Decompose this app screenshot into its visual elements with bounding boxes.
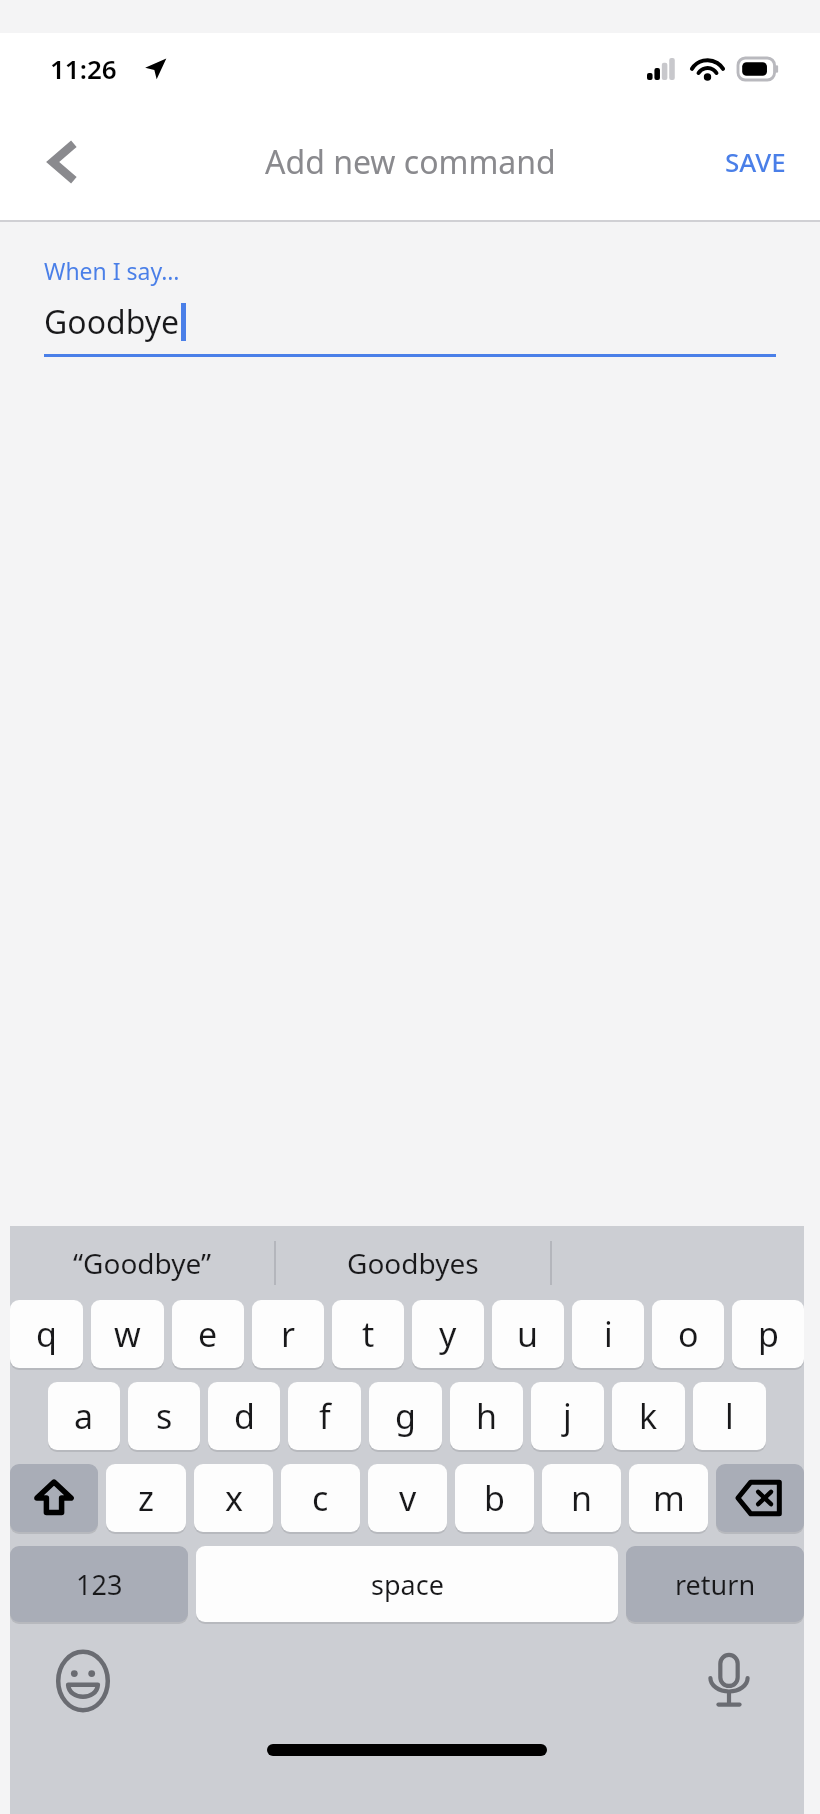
button[interactable]: Backspace — [716, 1464, 804, 1534]
staticText: d — [234, 1393, 255, 1439]
button[interactable]: m — [629, 1464, 708, 1534]
staticText: x — [225, 1475, 243, 1521]
button[interactable]: i — [572, 1300, 644, 1370]
button[interactable]: j — [531, 1382, 604, 1452]
staticText: g — [395, 1393, 416, 1439]
staticText: k — [639, 1393, 658, 1439]
button[interactable]: x — [194, 1464, 273, 1534]
button[interactable]: k — [612, 1382, 685, 1452]
button[interactable]: y — [412, 1300, 484, 1370]
staticText: u — [517, 1311, 539, 1357]
button[interactable]: Dictation — [698, 1650, 760, 1712]
staticText: f — [319, 1393, 331, 1439]
staticText: Goodbye — [44, 300, 180, 344]
button[interactable]: c — [281, 1464, 360, 1534]
button[interactable]: “Goodbye” — [10, 1226, 274, 1300]
button[interactable]: Back — [22, 122, 102, 202]
button[interactable]: 123 — [10, 1546, 188, 1624]
button[interactable]: d — [208, 1382, 280, 1452]
staticText: p — [758, 1311, 779, 1357]
button[interactable]: b — [455, 1464, 534, 1534]
staticText: r — [281, 1311, 296, 1357]
staticText: s — [156, 1393, 173, 1439]
staticText: c — [312, 1475, 329, 1521]
button[interactable]: return — [626, 1546, 804, 1624]
staticText: v — [399, 1475, 417, 1521]
staticText: space — [371, 1566, 444, 1603]
button[interactable]: v — [368, 1464, 447, 1534]
button[interactable]: Shift — [10, 1464, 98, 1534]
button[interactable]: z — [106, 1464, 186, 1534]
button[interactable]: a — [48, 1382, 120, 1452]
staticText: l — [725, 1393, 734, 1439]
staticText: “Goodbye” — [73, 1244, 212, 1282]
staticText: n — [571, 1475, 593, 1521]
staticText: i — [604, 1311, 613, 1357]
staticText: When I say… — [44, 255, 180, 286]
staticText: w — [114, 1311, 141, 1357]
button[interactable]: q — [10, 1300, 83, 1370]
button[interactable]: space — [196, 1546, 618, 1624]
button[interactable]: w — [91, 1300, 164, 1370]
button[interactable]: g — [369, 1382, 442, 1452]
staticText: z — [138, 1475, 154, 1521]
staticText: j — [563, 1393, 572, 1439]
staticText: b — [484, 1475, 505, 1521]
button[interactable]: l — [693, 1382, 766, 1452]
button[interactable]: Emoji — [52, 1650, 114, 1712]
button[interactable]: r — [252, 1300, 324, 1370]
staticText: 11:26 — [50, 51, 117, 86]
staticText: return — [675, 1566, 756, 1603]
staticText: m — [653, 1475, 685, 1521]
staticText: q — [36, 1311, 57, 1357]
button[interactable]: u — [492, 1300, 564, 1370]
staticText: SAVE — [725, 144, 786, 179]
button[interactable]: n — [542, 1464, 621, 1534]
staticText: h — [476, 1393, 498, 1439]
button[interactable]: p — [732, 1300, 804, 1370]
staticText: a — [74, 1393, 94, 1439]
button[interactable]: h — [450, 1382, 523, 1452]
button[interactable]: Goodbyes — [276, 1226, 550, 1300]
staticText: e — [198, 1311, 218, 1357]
button[interactable]: SAVE — [707, 130, 804, 193]
staticText: 123 — [76, 1566, 123, 1603]
button[interactable]: t — [332, 1300, 404, 1370]
button[interactable]: o — [652, 1300, 724, 1370]
button[interactable]: s — [128, 1382, 200, 1452]
staticText: Goodbyes — [347, 1244, 479, 1282]
staticText: t — [362, 1311, 375, 1357]
button[interactable]: e — [172, 1300, 244, 1370]
staticText: Add new command — [265, 140, 556, 184]
staticText: o — [678, 1311, 699, 1357]
button[interactable]: f — [288, 1382, 361, 1452]
staticText: y — [439, 1311, 457, 1357]
